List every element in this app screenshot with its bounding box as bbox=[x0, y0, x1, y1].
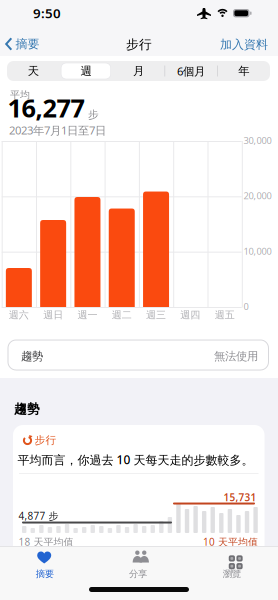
staticText: 平均而言，你過去 10 天每天走的步數較多。 bbox=[17, 451, 253, 468]
button[interactable]: 6個月 bbox=[165, 61, 217, 81]
staticText: 週一 bbox=[77, 308, 97, 321]
staticText: 瀏覽 bbox=[223, 568, 241, 580]
staticText: 9:50 bbox=[33, 4, 61, 22]
staticText: 20,000 bbox=[243, 189, 271, 202]
staticText: 4,877 步 bbox=[18, 509, 58, 523]
staticText: 週日 bbox=[43, 308, 63, 321]
staticText: 週二 bbox=[112, 308, 132, 321]
staticText: 16,277 bbox=[7, 90, 84, 125]
button[interactable]: 瀏覽 bbox=[186, 549, 278, 583]
staticText: 0 bbox=[243, 300, 248, 313]
staticText: 步行 bbox=[126, 36, 152, 52]
staticText: 趨勢 bbox=[14, 401, 40, 417]
button[interactable]: 週 bbox=[60, 61, 112, 81]
staticText: 趨勢 bbox=[21, 349, 43, 363]
staticText: 18 天平均值 bbox=[18, 535, 73, 549]
button[interactable]: 月 bbox=[112, 61, 165, 81]
staticText: 加入資料 bbox=[220, 37, 268, 52]
staticText: 天 bbox=[28, 64, 39, 78]
button[interactable]: 趨勢 bbox=[8, 340, 268, 370]
button[interactable]: 分享 bbox=[92, 549, 184, 583]
staticText: 週四 bbox=[180, 308, 200, 321]
staticText: 週三 bbox=[146, 308, 166, 321]
staticText: 分享 bbox=[129, 568, 147, 580]
staticText: 6個月 bbox=[177, 63, 205, 79]
staticText: 無法使用 bbox=[214, 349, 258, 363]
staticText: 30,000 bbox=[243, 134, 271, 147]
staticText: 平均 bbox=[10, 88, 30, 101]
staticText: 2023年7月1日至7日 bbox=[9, 122, 106, 138]
staticText: 週六 bbox=[9, 308, 29, 321]
staticText: 摘要 bbox=[15, 36, 39, 51]
staticText: 年 bbox=[238, 64, 249, 78]
staticText: 步行 bbox=[34, 433, 56, 447]
button[interactable]: 天 bbox=[7, 61, 60, 81]
staticText: 週 bbox=[80, 64, 91, 78]
staticText: 步 bbox=[88, 108, 99, 121]
button[interactable]: 返回摘要 bbox=[5, 36, 39, 51]
button[interactable]: 加入資料 bbox=[220, 37, 268, 52]
staticText: 10,000 bbox=[243, 245, 271, 257]
staticText: 月 bbox=[133, 64, 144, 78]
staticText: 10 天平均值 bbox=[203, 535, 258, 549]
staticText: 週五 bbox=[215, 308, 235, 321]
staticText: 摘要 bbox=[36, 568, 54, 580]
button[interactable]: 步行 bbox=[13, 425, 264, 600]
button[interactable]: 摘要 bbox=[0, 549, 91, 583]
button[interactable]: 年 bbox=[217, 61, 270, 81]
staticText: 15,731 bbox=[223, 490, 256, 504]
